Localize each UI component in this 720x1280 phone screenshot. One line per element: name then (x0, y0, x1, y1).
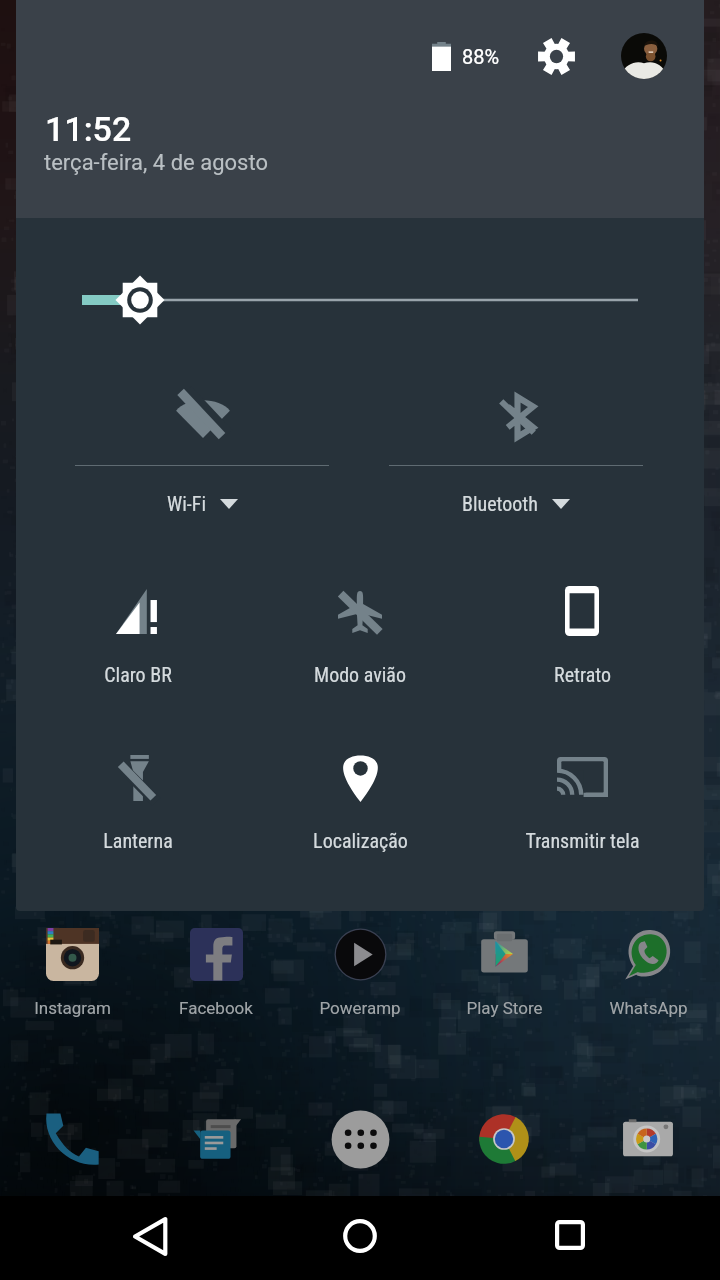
button[interactable]: Facebook (150, 920, 282, 1024)
staticText: Transmitir tela (525, 829, 640, 852)
button[interactable]: Phone (6, 1096, 138, 1182)
staticText: 11:52 (45, 109, 132, 149)
button[interactable]: Localização (250, 735, 470, 865)
staticText: WhatsApp (609, 998, 688, 1018)
button[interactable]: Lanterna (28, 737, 248, 867)
staticText: Facebook (179, 998, 253, 1018)
button[interactable]: Wi-Fi (42, 372, 362, 532)
staticText: terça-feira, 4 de agosto (44, 150, 268, 176)
button[interactable]: Camera (582, 1096, 714, 1182)
button[interactable]: Retrato (472, 568, 692, 698)
button[interactable]: Settings (528, 28, 584, 84)
button[interactable]: Recents (515, 1193, 625, 1277)
button[interactable]: Play Store (438, 920, 570, 1024)
staticText: Play Store (466, 998, 543, 1018)
staticText: Poweramp (319, 998, 401, 1018)
button[interactable]: User profile (621, 33, 667, 79)
button[interactable]: All apps (294, 1096, 426, 1182)
staticText: Bluetooth (462, 492, 538, 515)
staticText: Retrato (554, 663, 611, 686)
button[interactable]: Messages (150, 1096, 282, 1182)
staticText: Claro BR (104, 663, 172, 686)
staticText: Lanterna (103, 829, 173, 852)
button[interactable]: Instagram (6, 920, 138, 1024)
button[interactable]: Bluetooth (356, 372, 676, 532)
button[interactable]: WhatsApp (582, 920, 714, 1024)
button[interactable]: Home (305, 1194, 415, 1278)
button[interactable]: Chrome (438, 1096, 570, 1182)
button[interactable]: Claro BR (28, 571, 248, 701)
button[interactable]: Back (95, 1194, 205, 1278)
button[interactable]: Modo avião (250, 572, 470, 702)
button[interactable]: Poweramp (294, 920, 426, 1024)
button[interactable]: 11:52 (45, 109, 132, 149)
staticText: Wi-Fi (167, 492, 206, 515)
staticText: Modo avião (314, 663, 406, 686)
staticText: Instagram (34, 998, 111, 1018)
staticText: 88% (462, 45, 500, 68)
button[interactable]: terça-feira, 4 de agosto (44, 150, 268, 176)
staticText: Localização (313, 829, 408, 852)
button[interactable]: Transmitir tela (472, 739, 692, 869)
